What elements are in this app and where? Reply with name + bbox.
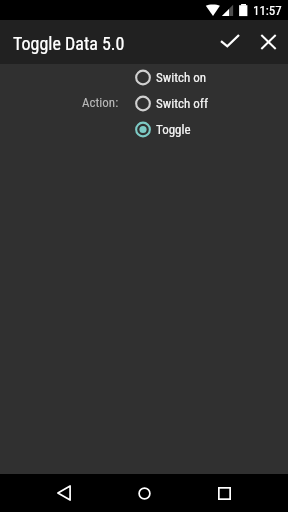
staticText: Toggle <box>156 122 191 137</box>
button[interactable]: Home <box>104 474 184 512</box>
button[interactable]: Done <box>207 18 253 62</box>
staticText: 11:57 <box>253 3 282 18</box>
button[interactable]: Back <box>24 474 104 512</box>
button[interactable]: Toggle <box>134 116 191 142</box>
staticText: Action: <box>82 95 119 110</box>
button[interactable]: Switch on <box>134 64 207 90</box>
staticText: Switch off <box>156 96 209 111</box>
button[interactable]: Switch off <box>134 90 209 116</box>
button[interactable]: Close <box>249 20 288 64</box>
button[interactable]: Recents <box>184 474 264 512</box>
staticText: Toggle Data 5.0 <box>13 33 125 54</box>
staticText: Switch on <box>156 70 207 85</box>
